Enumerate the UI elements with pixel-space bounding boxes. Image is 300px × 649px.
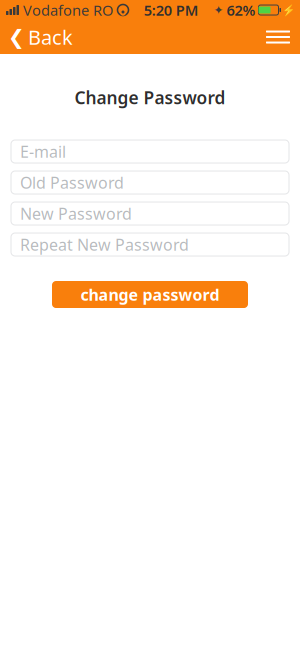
staticText: ⚡ xyxy=(282,4,295,16)
staticText: Old Password xyxy=(20,172,124,193)
button[interactable]: New Password xyxy=(11,202,289,225)
staticText: ❮ xyxy=(8,26,25,48)
button[interactable]: Repeat New Password xyxy=(11,233,289,256)
button[interactable]: Old Password xyxy=(11,171,289,194)
button[interactable]: ❮ xyxy=(0,20,83,54)
button[interactable]: Menu xyxy=(256,20,300,54)
staticText: E-mail xyxy=(20,141,66,162)
staticText: Vodafone RO xyxy=(23,0,113,20)
staticText: Back xyxy=(28,24,73,50)
staticText: 62% xyxy=(226,0,255,20)
button[interactable]: E-mail xyxy=(11,140,289,163)
staticText: 5:20 PM xyxy=(144,0,199,20)
button[interactable]: change password xyxy=(52,281,248,308)
staticText: New Password xyxy=(20,203,132,224)
staticText: ✦ xyxy=(213,3,223,17)
staticText: Change Password xyxy=(74,86,225,109)
staticText: change password xyxy=(80,284,219,305)
staticText: Repeat New Password xyxy=(20,234,189,255)
